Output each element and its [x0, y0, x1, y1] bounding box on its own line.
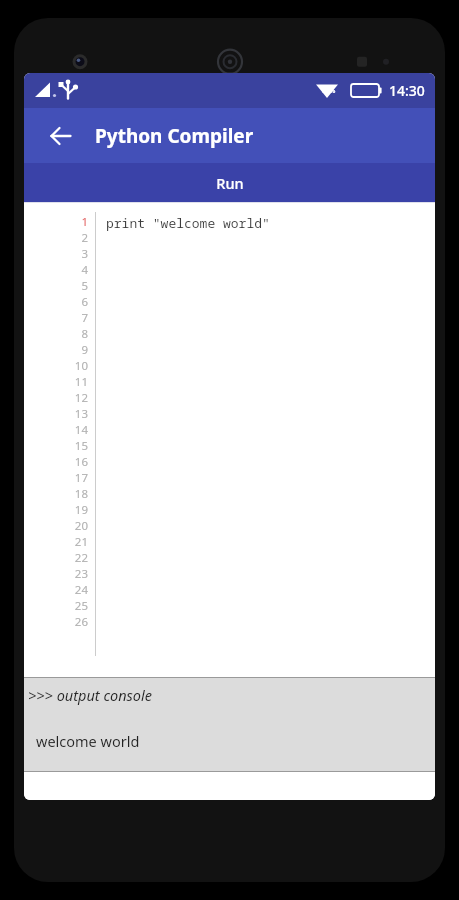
staticText: 19% [321, 86, 336, 96]
staticText: >>> output console [28, 685, 152, 705]
staticText: 8 [44, 326, 88, 342]
staticText: welcome world [36, 731, 140, 751]
staticText: Python Compiler [95, 123, 254, 149]
staticText: 1 [44, 214, 88, 230]
staticText: 25 [44, 598, 88, 614]
staticText: 26 [44, 614, 88, 630]
staticText: 3 [44, 246, 88, 262]
staticText: 15 [44, 438, 88, 454]
staticText: 2 [44, 230, 88, 246]
staticText: 7 [44, 310, 88, 326]
staticText: Run [216, 173, 244, 193]
button[interactable]: 1 [24, 202, 435, 662]
staticText: 24 [44, 582, 88, 598]
staticText: 11 [44, 374, 88, 390]
button[interactable]: Run [24, 163, 435, 202]
staticText: 21 [44, 534, 88, 550]
staticText: 6 [44, 294, 88, 310]
staticText: 22 [44, 550, 88, 566]
staticText: 18 [44, 486, 88, 502]
staticText: print "welcome world" [106, 214, 270, 232]
staticText: 16 [44, 454, 88, 470]
staticText: 13 [44, 406, 88, 422]
staticText: 10 [44, 358, 88, 374]
button[interactable]: >>> output console [24, 677, 435, 772]
staticText: 19 [44, 502, 88, 518]
staticText: 5 [44, 278, 88, 294]
staticText: 17 [44, 470, 88, 486]
staticText: 12 [44, 390, 88, 406]
button[interactable]: Back [44, 119, 78, 153]
staticText: 23 [44, 566, 88, 582]
staticText: 14:30 [389, 81, 425, 100]
staticText: 4 [44, 262, 88, 278]
staticText: 20 [44, 518, 88, 534]
staticText: 14 [44, 422, 88, 438]
staticText: 9 [44, 342, 88, 358]
